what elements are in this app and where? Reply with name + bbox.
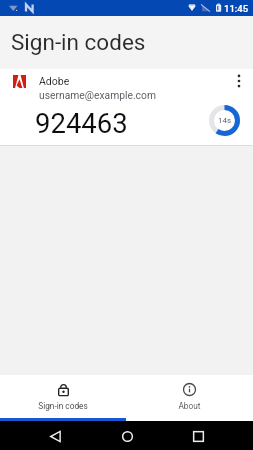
button[interactable]: Back <box>43 424 67 448</box>
staticText: 924463 <box>35 107 128 139</box>
button[interactable]: Recents <box>186 424 210 448</box>
staticText: 11:45 <box>224 3 249 14</box>
staticText: Sign-in codes <box>11 29 146 55</box>
staticText: Sign-in codes <box>38 401 88 411</box>
staticText: About <box>178 401 201 411</box>
button[interactable]: More options <box>228 70 250 92</box>
button[interactable]: Home <box>115 424 139 448</box>
button[interactable]: About <box>126 375 253 411</box>
button[interactable]: Sign-in codes <box>0 375 126 411</box>
button[interactable]: Adobe <box>0 69 253 146</box>
staticText: username@example.com <box>39 89 156 101</box>
staticText: Adobe <box>39 75 70 87</box>
staticText: 14s <box>218 116 232 125</box>
